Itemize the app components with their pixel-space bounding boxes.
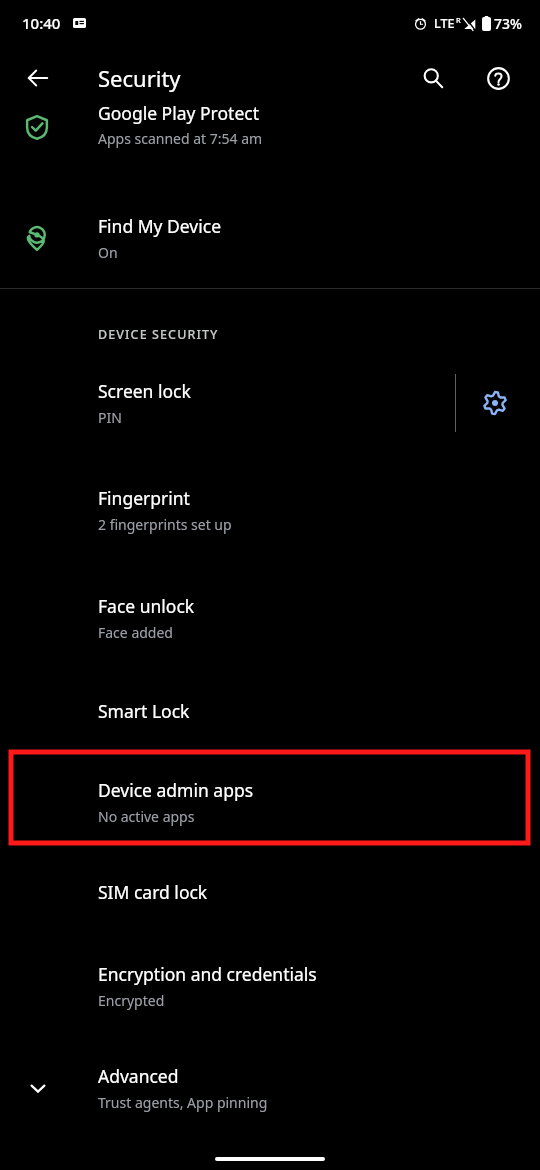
staticText: Encryption and credentials xyxy=(98,962,317,986)
staticText: Face added xyxy=(98,623,173,642)
staticText: 2 fingerprints set up xyxy=(98,515,232,534)
staticText: 10:40 xyxy=(22,13,61,33)
staticText: DEVICE SECURITY xyxy=(98,326,219,343)
staticText: Fingerprint xyxy=(98,486,190,510)
staticText: Apps scanned at 7:54 am xyxy=(98,129,263,148)
button[interactable]: Advanced xyxy=(0,1038,540,1138)
button[interactable]: Fingerprint xyxy=(0,456,540,564)
button[interactable]: Smart Lock xyxy=(0,672,540,750)
staticText: R xyxy=(456,15,461,25)
button[interactable]: Screen lock settings xyxy=(472,380,518,426)
button[interactable]: Screen lock xyxy=(0,349,446,456)
button[interactable]: Google Play Protect xyxy=(0,110,540,192)
staticText: No active apps xyxy=(98,807,195,826)
staticText: Advanced xyxy=(98,1064,179,1088)
staticText: PIN xyxy=(98,408,122,427)
button[interactable]: Device admin apps xyxy=(0,750,540,851)
staticText: Face unlock xyxy=(98,594,195,618)
staticText: LTE xyxy=(434,15,455,32)
button[interactable]: Find My Device xyxy=(0,192,540,284)
button[interactable]: Back xyxy=(14,54,62,102)
staticText: On xyxy=(98,243,118,262)
button[interactable]: Help xyxy=(474,54,522,102)
staticText: SIM card lock xyxy=(98,880,208,904)
button[interactable]: SIM card lock xyxy=(0,851,540,933)
staticText: 73% xyxy=(494,14,522,33)
staticText: Trust agents, App pinning xyxy=(98,1093,268,1112)
staticText: Google Play Protect xyxy=(98,101,259,125)
staticText: Security xyxy=(98,63,181,93)
staticText: Device admin apps xyxy=(98,778,254,802)
staticText: Encrypted xyxy=(98,991,165,1010)
staticText: Smart Lock xyxy=(98,699,190,723)
button[interactable]: Search xyxy=(409,54,457,102)
button[interactable]: Encryption and credentials xyxy=(0,933,540,1038)
staticText: Find My Device xyxy=(98,214,222,238)
button[interactable]: Face unlock xyxy=(0,564,540,672)
staticText: Screen lock xyxy=(98,379,191,403)
